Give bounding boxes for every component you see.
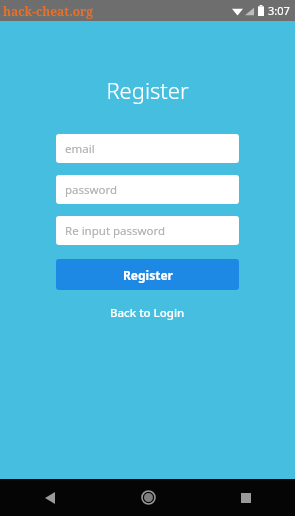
staticText: email	[65, 141, 95, 157]
button[interactable]: Home	[99, 479, 197, 516]
staticText: Register	[56, 75, 239, 105]
button[interactable]: Back	[0, 479, 99, 516]
staticText: 3:07	[268, 3, 290, 18]
staticText: hack-cheat.org	[3, 3, 94, 19]
button[interactable]: password	[56, 175, 239, 204]
button[interactable]: Recent apps	[197, 479, 295, 516]
staticText: Register	[123, 267, 173, 283]
button[interactable]: Re input password	[56, 216, 239, 245]
button[interactable]: Back to Login	[56, 302, 239, 324]
staticText: Back to Login	[110, 305, 185, 321]
button[interactable]: Register	[56, 259, 239, 290]
staticText: password	[65, 182, 118, 198]
button[interactable]: email	[56, 134, 239, 163]
staticText: Re input password	[65, 223, 166, 239]
